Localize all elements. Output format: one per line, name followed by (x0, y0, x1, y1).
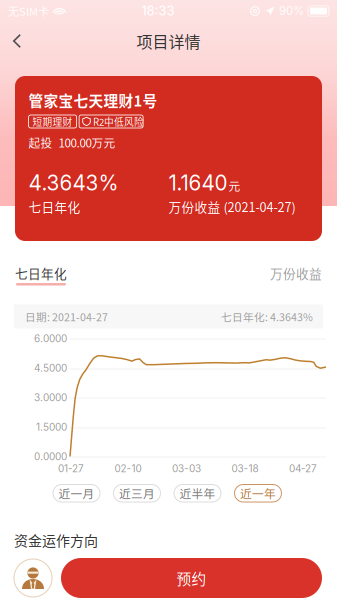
staticText: 3.0000 (34, 391, 67, 404)
staticText: 短期理财 (33, 114, 73, 128)
staticText: 0.0000 (34, 450, 67, 463)
staticText: 日期: 2021-04-27 (25, 309, 108, 324)
button[interactable]: 万份收益 (270, 265, 322, 285)
staticText: 万份收益 (270, 264, 322, 282)
staticText: 近一年 (240, 485, 276, 502)
staticText: 6.0000 (34, 332, 67, 345)
staticText: 项目详情 (136, 29, 200, 53)
staticText: 无SIM卡 (8, 3, 49, 19)
staticText: 七日年化: 4.3643% (221, 309, 313, 324)
staticText: 资金运作方向 (14, 530, 98, 550)
staticText: 近一月 (58, 485, 94, 502)
button[interactable]: 近半年 (174, 484, 221, 502)
staticText: 元 (229, 177, 241, 194)
staticText: 万份收益 (2021-04-27) (169, 197, 296, 216)
button[interactable]: 预约 (61, 558, 322, 598)
staticText: 4.5000 (34, 362, 67, 374)
staticText: 18:33 (141, 3, 174, 19)
staticText: 03-18 (231, 462, 258, 475)
button[interactable]: Back (0, 24, 34, 58)
staticText: 01-27 (58, 462, 84, 475)
staticText: 4.3643% (29, 170, 119, 195)
staticText: 七日年化 (29, 197, 81, 216)
staticText: 1.1640 (169, 170, 228, 195)
staticText: 管家宝七天理财1号 (29, 89, 158, 111)
staticText: 起投 100.00万元 (29, 134, 116, 151)
staticText: 90% (279, 4, 304, 18)
staticText: R2中低风险 (93, 114, 144, 128)
button[interactable]: 七日年化 (15, 265, 67, 285)
staticText: 近三月 (119, 485, 155, 502)
staticText: 02-10 (114, 462, 141, 475)
button[interactable]: 客服 (14, 559, 52, 597)
staticText: 七日年化 (15, 264, 67, 282)
button[interactable]: 近一年 (234, 484, 281, 502)
staticText: 04-27 (289, 462, 317, 475)
staticText: 03-03 (172, 462, 201, 475)
staticText: 近半年 (179, 485, 215, 502)
staticText: 1.5000 (36, 421, 67, 433)
button[interactable]: 近三月 (113, 484, 160, 502)
staticText: 预约 (176, 567, 206, 589)
button[interactable]: 近一月 (53, 484, 100, 502)
